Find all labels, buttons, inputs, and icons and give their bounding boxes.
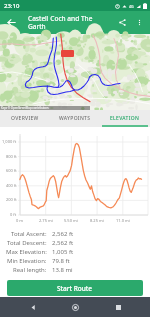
- staticText: 200 ft: [6, 197, 17, 202]
- staticText: 5.50 mi: [64, 218, 78, 223]
- button[interactable]: Home: [65, 297, 85, 317]
- staticText: 79.8 ft: [52, 257, 70, 265]
- staticText: 2,562 ft: [52, 239, 74, 247]
- staticText: Total Descent:: [7, 239, 47, 247]
- staticText: 0 m: [16, 218, 24, 223]
- staticText: 1,005 ft: [52, 248, 74, 256]
- button[interactable]: More options: [131, 14, 147, 30]
- staticText: 4G: [129, 4, 134, 9]
- staticText: 13.8 mi: [52, 266, 73, 274]
- button[interactable]: WAYPOINTS: [50, 110, 100, 127]
- staticText: Real length:: [13, 266, 47, 274]
- button[interactable]: Start Route: [7, 280, 143, 296]
- button[interactable]: Share: [114, 14, 130, 30]
- staticText: 11.0 mi: [116, 218, 130, 223]
- staticText: Keys © OpenStreetMap contributors: [1, 106, 49, 110]
- staticText: 800 ft: [6, 154, 17, 159]
- staticText: 1,000 ft: [2, 139, 17, 144]
- button[interactable]: Recent apps: [108, 297, 128, 317]
- staticText: Total Ascent:: [11, 230, 47, 238]
- staticText: Max Elevation:: [6, 248, 47, 256]
- staticText: 2.75 mi: [39, 218, 53, 223]
- staticText: Start Route: [57, 284, 93, 293]
- button[interactable]: ELEVATION: [100, 110, 150, 127]
- staticText: Min Elevation:: [7, 257, 47, 265]
- staticText: Castell Coch and The Garth: [28, 14, 98, 31]
- staticText: ELEVATION: [110, 115, 140, 122]
- staticText: OVERVIEW: [11, 115, 39, 122]
- staticText: 8.25 mi: [90, 218, 104, 223]
- staticText: 23:10: [4, 2, 20, 10]
- staticText: 600 ft: [6, 168, 17, 173]
- staticText: 0 ft: [10, 212, 17, 217]
- button[interactable]: OVERVIEW: [0, 110, 50, 127]
- staticText: WAYPOINTS: [59, 115, 91, 122]
- button[interactable]: Navigate up: [3, 14, 20, 31]
- staticText: 2,562 ft: [52, 230, 74, 238]
- button[interactable]: Back: [23, 297, 43, 317]
- staticText: 400 ft: [6, 183, 17, 188]
